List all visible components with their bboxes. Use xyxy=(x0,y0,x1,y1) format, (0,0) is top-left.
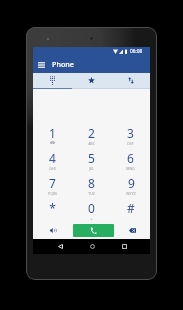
staticText: JKL xyxy=(89,166,94,171)
staticText: 3 xyxy=(127,125,134,141)
button[interactable]: Home xyxy=(87,239,97,254)
button[interactable]: 4 xyxy=(33,150,72,175)
button[interactable]: 3 xyxy=(111,125,150,150)
staticText: 0 xyxy=(88,200,95,216)
staticText: 9 xyxy=(128,175,135,191)
staticText: PQRS xyxy=(48,191,57,196)
staticText: 7 xyxy=(49,175,56,191)
staticText: 1 xyxy=(49,125,56,141)
button[interactable]: Open navigation drawer xyxy=(35,58,48,71)
button[interactable]: # xyxy=(111,200,150,221)
staticText: 6 xyxy=(127,150,134,166)
staticText: ABC xyxy=(88,141,95,146)
staticText: GHI xyxy=(49,166,56,171)
button[interactable]: Back xyxy=(55,239,65,254)
button[interactable]: 7 xyxy=(33,175,72,200)
button[interactable]: 1 xyxy=(33,125,72,150)
staticText: 5 xyxy=(88,150,95,166)
staticText: Phone xyxy=(52,59,74,69)
button[interactable]: Backspace xyxy=(114,221,150,239)
staticText: WXYZ xyxy=(126,191,136,196)
button[interactable]: Call xyxy=(73,224,114,237)
button[interactable]: 5 xyxy=(72,150,111,175)
button[interactable]: * xyxy=(33,200,72,221)
button[interactable]: Recents xyxy=(119,239,129,254)
button[interactable]: Dialpad tab xyxy=(33,73,72,89)
button[interactable]: 2 xyxy=(72,125,111,150)
button[interactable]: Call history tab xyxy=(111,73,150,89)
staticText: 8 xyxy=(88,175,95,191)
staticText: 06:08 xyxy=(130,48,143,55)
button[interactable]: Speaker xyxy=(33,221,73,239)
staticText: + xyxy=(90,216,93,221)
staticText: * xyxy=(49,200,56,216)
staticText: # xyxy=(127,200,135,216)
staticText: 4 xyxy=(49,150,56,166)
staticText: 2 xyxy=(88,125,95,141)
button[interactable]: 9 xyxy=(111,175,150,200)
button[interactable]: 0 xyxy=(72,200,111,221)
button[interactable]: 6 xyxy=(111,150,150,175)
staticText: TUV xyxy=(88,191,95,196)
staticText: DEF xyxy=(127,141,134,146)
staticText: MNO xyxy=(126,166,135,171)
button[interactable]: 8 xyxy=(72,175,111,200)
button[interactable]: Favorites tab xyxy=(72,73,111,89)
